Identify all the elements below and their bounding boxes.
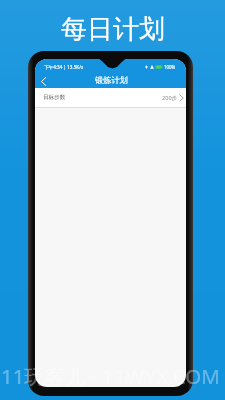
- staticText: 锻炼计划: [95, 75, 128, 85]
- button[interactable]: 目标步数: [35, 88, 186, 107]
- staticText: 11玩客儿 · 11WYX.COM: [1, 362, 220, 390]
- staticText: 每日计划: [61, 13, 165, 46]
- staticText: 下午4:34 | 13.5K/s: [44, 64, 84, 70]
- button[interactable]: Back: [36, 74, 50, 88]
- staticText: 100%: [164, 64, 176, 70]
- staticText: 200步: [162, 94, 178, 102]
- staticText: 目标步数: [43, 94, 66, 101]
